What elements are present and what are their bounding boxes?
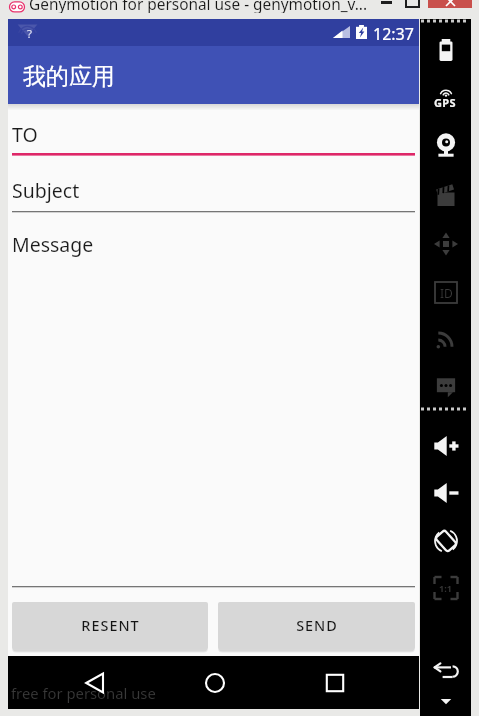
staticText: ?: [27, 26, 32, 42]
button[interactable]: Volume up: [420, 430, 471, 462]
button[interactable]: Subject: [12, 170, 415, 210]
button[interactable]: Identifiers: [420, 278, 471, 306]
button[interactable]: Battery: [420, 34, 471, 66]
staticText: 我的应用: [23, 62, 115, 91]
staticText: Genymotion for personal use - genymotion…: [29, 0, 368, 13]
staticText: TO: [12, 121, 38, 148]
button[interactable]: Maximize: [401, 0, 423, 10]
button[interactable]: Recents: [295, 656, 375, 709]
button[interactable]: TO: [12, 114, 415, 154]
button[interactable]: Close: [428, 0, 472, 8]
staticText: Subject: [12, 177, 80, 204]
button[interactable]: RESENT: [12, 602, 208, 649]
button[interactable]: Screen record: [420, 179, 471, 211]
staticText: free for personal use: [11, 683, 156, 703]
button[interactable]: Minimize: [375, 0, 397, 10]
button[interactable]: Volume down: [420, 477, 471, 509]
button[interactable]: Message: [12, 224, 415, 264]
staticText: RESENT: [81, 616, 140, 636]
button[interactable]: Back: [55, 656, 135, 709]
button[interactable]: Screenshot: [420, 572, 471, 604]
button[interactable]: Move: [420, 228, 471, 260]
staticText: SEND: [296, 616, 338, 636]
staticText: ID: [440, 285, 453, 301]
staticText: 1:1: [439, 582, 452, 594]
staticText: GPS: [434, 95, 457, 110]
button[interactable]: Home: [175, 656, 255, 709]
staticText: 12:37: [373, 23, 414, 45]
staticText: Message: [12, 231, 94, 258]
button[interactable]: GPS: [420, 88, 471, 124]
button[interactable]: Network: [420, 323, 471, 355]
button[interactable]: Rotate: [420, 525, 471, 557]
button[interactable]: Messaging: [420, 369, 471, 401]
button[interactable]: SEND: [218, 602, 415, 649]
button[interactable]: Back: [420, 655, 471, 687]
button[interactable]: More: [420, 685, 471, 716]
button[interactable]: Camera: [420, 128, 471, 160]
